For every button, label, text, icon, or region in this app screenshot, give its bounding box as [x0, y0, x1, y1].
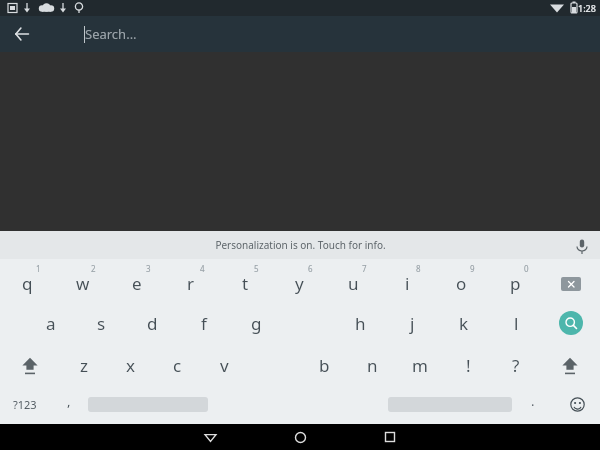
staticText: u — [348, 272, 359, 295]
staticText: n — [367, 354, 378, 377]
button[interactable]: Shift — [540, 344, 600, 386]
staticText: 8 — [416, 263, 421, 274]
button[interactable]: h — [334, 302, 386, 344]
staticText: 3 — [146, 263, 151, 274]
button[interactable]: s — [76, 302, 127, 344]
staticText: 6 — [308, 263, 313, 274]
staticText: j — [410, 312, 415, 335]
staticText: o — [456, 272, 467, 295]
staticText: x — [126, 354, 135, 377]
button[interactable]: a — [25, 302, 76, 344]
staticText: 1 — [36, 263, 41, 274]
button[interactable]: Shift — [0, 344, 60, 386]
staticText: y — [295, 272, 304, 295]
staticText: v — [220, 354, 229, 377]
staticText: m — [412, 354, 428, 377]
staticText: Personalization is on. Touch for info. — [215, 238, 386, 252]
staticText: 4 — [200, 263, 205, 274]
staticText: w — [76, 272, 90, 295]
staticText: f — [201, 312, 207, 335]
staticText: 9 — [470, 263, 475, 274]
button[interactable]: Space — [88, 386, 208, 422]
button[interactable]: Emoji — [554, 386, 600, 422]
staticText: 1:28 — [578, 2, 596, 14]
button[interactable]: b — [300, 344, 348, 386]
button[interactable]: Space — [388, 386, 512, 422]
staticText: , — [67, 392, 71, 410]
staticText: p — [510, 272, 521, 295]
staticText: d — [147, 312, 158, 335]
button[interactable]: 2 — [55, 259, 110, 302]
staticText: g — [251, 312, 262, 335]
button[interactable]: 5 — [218, 259, 272, 302]
button[interactable]: 6 — [272, 259, 326, 302]
staticText: a — [46, 312, 56, 335]
button[interactable]: Personalization is on. Touch for info. — [0, 231, 600, 259]
button[interactable]: , — [50, 386, 88, 422]
staticText: ? — [512, 354, 520, 377]
staticText: k — [459, 312, 469, 335]
button[interactable]: Back — [0, 16, 44, 52]
staticText: r — [187, 272, 195, 295]
button[interactable]: x — [107, 344, 154, 386]
button[interactable]: Backspace — [542, 259, 600, 302]
button[interactable]: ! — [444, 344, 492, 386]
staticText: i — [405, 272, 410, 295]
staticText: e — [132, 272, 142, 295]
button[interactable]: 1 — [0, 259, 55, 302]
button[interactable]: Search — [542, 302, 600, 344]
staticText: s — [97, 312, 106, 335]
staticText: ?123 — [13, 397, 37, 412]
staticText: c — [173, 354, 182, 377]
button[interactable]: z — [60, 344, 107, 386]
button[interactable]: m — [396, 344, 444, 386]
staticText: z — [80, 354, 88, 377]
button[interactable]: . — [512, 386, 554, 422]
button[interactable]: n — [348, 344, 396, 386]
button[interactable]: j — [386, 302, 438, 344]
button[interactable]: Home — [255, 424, 345, 450]
staticText: . — [531, 392, 535, 410]
button[interactable]: Search... — [84, 16, 600, 52]
button[interactable]: ?123 — [0, 386, 50, 422]
staticText: Search... — [85, 25, 137, 43]
staticText: l — [514, 312, 519, 335]
staticText: h — [355, 312, 366, 335]
button[interactable]: f — [178, 302, 230, 344]
button[interactable]: v — [201, 344, 248, 386]
button[interactable]: l — [490, 302, 542, 344]
staticText: 2 — [91, 263, 96, 274]
staticText: ! — [466, 354, 471, 377]
button[interactable]: Recent apps — [345, 424, 435, 450]
button[interactable]: 4 — [164, 259, 218, 302]
button[interactable]: g — [230, 302, 282, 344]
staticText: 7 — [362, 263, 367, 274]
button[interactable]: d — [127, 302, 178, 344]
button[interactable]: 9 — [434, 259, 488, 302]
staticText: b — [319, 354, 330, 377]
button[interactable]: k — [438, 302, 490, 344]
button[interactable]: Voice input — [564, 231, 600, 259]
button[interactable]: ? — [492, 344, 540, 386]
button[interactable]: 3 — [110, 259, 164, 302]
button[interactable]: 8 — [380, 259, 434, 302]
button[interactable]: Back — [165, 424, 255, 450]
staticText: 5 — [254, 263, 259, 274]
staticText: 0 — [524, 263, 529, 274]
button[interactable]: 0 — [488, 259, 542, 302]
staticText: q — [22, 272, 33, 295]
button[interactable]: 7 — [326, 259, 380, 302]
staticText: t — [242, 272, 249, 295]
button[interactable]: c — [154, 344, 201, 386]
